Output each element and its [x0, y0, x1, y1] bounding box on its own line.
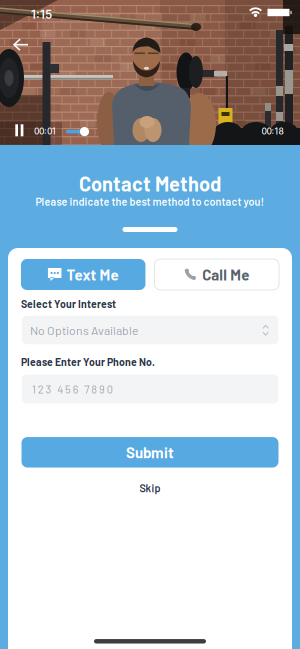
- staticText: No Options Available: [30, 323, 139, 337]
- button[interactable]: Skip: [139, 482, 160, 494]
- staticText: Submit: [126, 443, 174, 461]
- button[interactable]: Call Me: [155, 259, 279, 290]
- staticText: Skip: [139, 482, 160, 494]
- staticText: Please indicate the best method to conta…: [35, 195, 264, 208]
- staticText: Please Enter Your Phone No.: [21, 355, 155, 368]
- button[interactable]: Text Me: [21, 259, 145, 290]
- staticText: Contact Method: [79, 171, 221, 195]
- staticText: Call Me: [202, 265, 249, 283]
- staticText: Text Me: [66, 265, 118, 283]
- button[interactable]: No Options Available: [22, 316, 278, 344]
- button[interactable]: Submit: [21, 437, 278, 468]
- staticText: 00:18: [261, 126, 283, 137]
- staticText: 00:01: [34, 126, 56, 137]
- staticText: 123 456 7890: [32, 382, 113, 396]
- button[interactable]: Back: [0, 0, 40, 60]
- staticText: Select Your Interest: [21, 297, 116, 310]
- staticText: 1:15: [31, 7, 52, 21]
